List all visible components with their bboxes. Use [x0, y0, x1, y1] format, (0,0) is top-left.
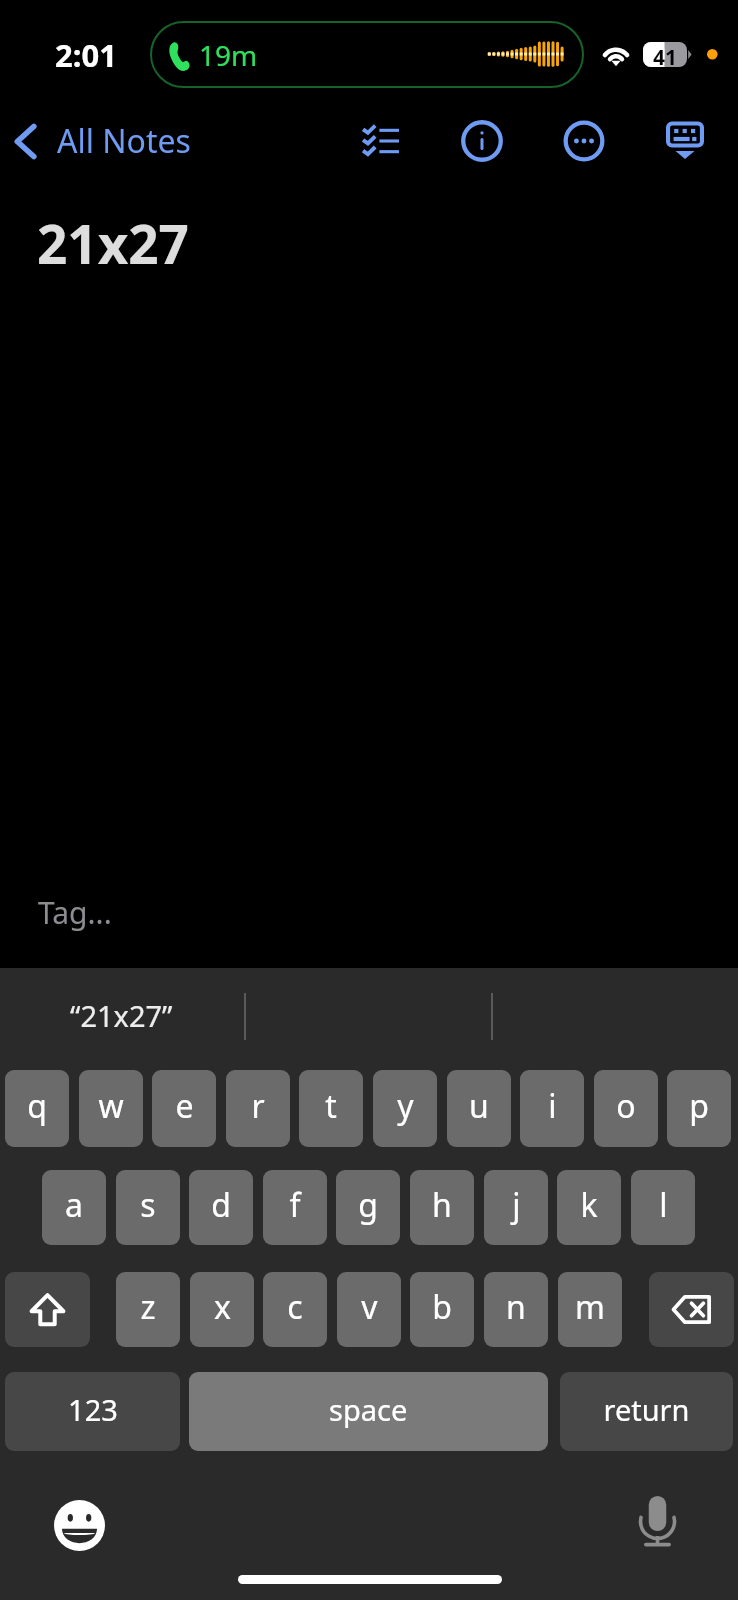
button[interactable]: Info [454, 113, 510, 169]
button[interactable]: p [667, 1070, 731, 1147]
button[interactable]: k [557, 1170, 621, 1245]
button[interactable]: h [410, 1170, 474, 1245]
button[interactable]: return [560, 1372, 733, 1451]
button[interactable]: u [447, 1070, 511, 1147]
staticText: x [214, 1285, 231, 1329]
staticText: 21x27 [37, 207, 189, 279]
button[interactable]: Checklist [352, 115, 410, 173]
staticText: All Notes [57, 119, 191, 163]
staticText: j [512, 1183, 521, 1227]
staticText: space [329, 1390, 408, 1429]
staticText: k [580, 1183, 598, 1227]
staticText: i [548, 1084, 557, 1128]
button[interactable]: e [152, 1070, 216, 1147]
staticText: z [140, 1285, 156, 1329]
staticText: return [603, 1390, 690, 1429]
button[interactable]: space [189, 1372, 548, 1451]
button[interactable]: All Notes [14, 101, 204, 181]
staticText: y [397, 1084, 414, 1128]
staticText: d [211, 1183, 231, 1227]
button[interactable]: v [337, 1272, 401, 1347]
button[interactable]: j [484, 1170, 548, 1245]
button[interactable]: d [189, 1170, 253, 1245]
staticText: v [361, 1285, 378, 1329]
button[interactable]: 123 [5, 1372, 180, 1451]
button[interactable]: i [520, 1070, 584, 1147]
button[interactable]: Dismiss keyboard [658, 113, 712, 167]
staticText: c [287, 1285, 303, 1329]
staticText: q [27, 1084, 47, 1128]
staticText: o [616, 1084, 636, 1128]
staticText: h [432, 1183, 452, 1227]
staticText: 123 [68, 1390, 118, 1429]
staticText: 2:01 [55, 34, 117, 76]
button[interactable]: x [190, 1272, 254, 1347]
button[interactable]: y [373, 1070, 437, 1147]
staticText: l [659, 1183, 668, 1227]
staticText: a [65, 1183, 83, 1227]
staticText: 41 [653, 43, 678, 72]
staticText: w [98, 1084, 124, 1128]
button[interactable]: t [299, 1070, 363, 1147]
staticText: Tag... [38, 892, 112, 933]
button[interactable]: Backspace [649, 1272, 734, 1347]
button[interactable]: l [631, 1170, 695, 1245]
button[interactable]: f [263, 1170, 327, 1245]
button[interactable]: r [226, 1070, 290, 1147]
button[interactable]: c [263, 1272, 327, 1347]
button[interactable]: Dictation [630, 1492, 685, 1552]
staticText: f [289, 1183, 301, 1227]
button[interactable]: n [484, 1272, 548, 1347]
staticText: “21x27” [70, 996, 173, 1035]
staticText: 19m [199, 36, 258, 74]
button[interactable]: Emoji keyboard [48, 1494, 110, 1556]
staticText: m [575, 1285, 605, 1329]
button[interactable]: a [42, 1170, 106, 1245]
staticText: t [325, 1084, 337, 1128]
button[interactable]: o [594, 1070, 658, 1147]
button[interactable]: z [116, 1272, 180, 1347]
button[interactable]: Shift [5, 1272, 90, 1347]
staticText: u [469, 1084, 489, 1128]
staticText: p [689, 1084, 709, 1128]
button[interactable]: q [5, 1070, 69, 1147]
button[interactable]: g [336, 1170, 400, 1245]
staticText: n [506, 1285, 526, 1329]
staticText: g [358, 1183, 378, 1227]
staticText: s [140, 1183, 156, 1227]
button[interactable]: More options [556, 113, 612, 169]
staticText: e [175, 1084, 194, 1128]
button[interactable]: m [558, 1272, 622, 1347]
staticText: r [251, 1084, 265, 1128]
button[interactable]: b [410, 1272, 474, 1347]
button[interactable]: s [116, 1170, 180, 1245]
button[interactable]: w [79, 1070, 143, 1147]
staticText: b [432, 1285, 452, 1329]
